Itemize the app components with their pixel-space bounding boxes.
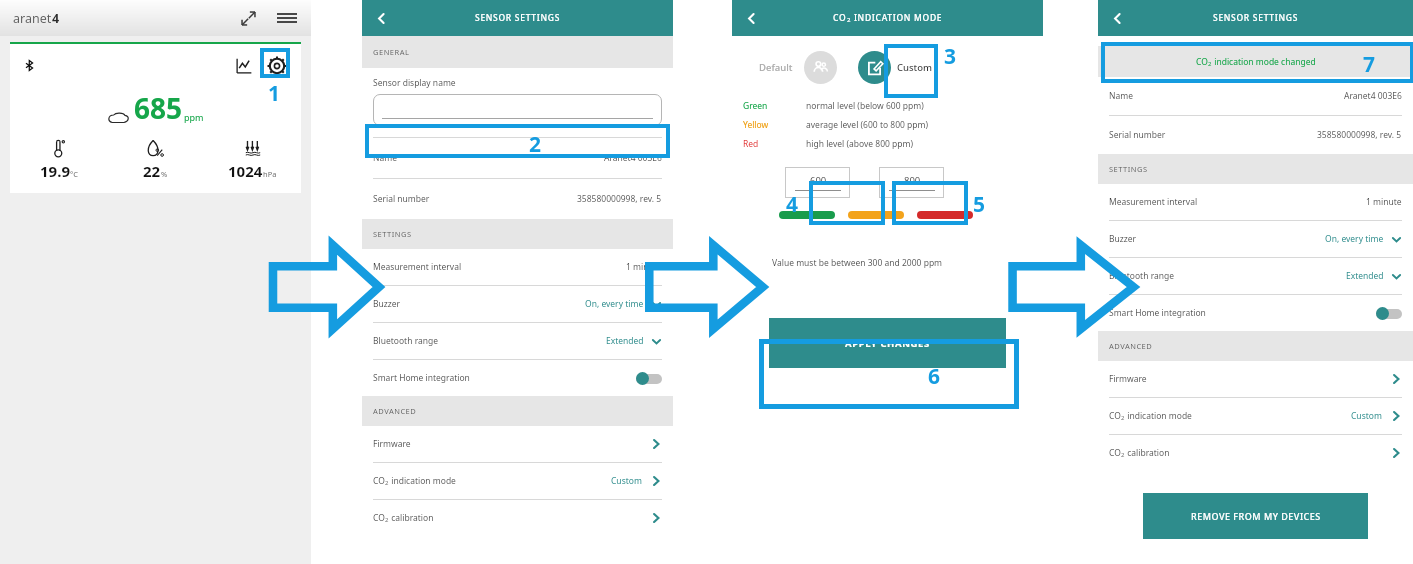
staticText: Serial number bbox=[1109, 129, 1166, 141]
staticText: Custom bbox=[1351, 410, 1382, 422]
staticText: indication mode bbox=[1125, 410, 1192, 422]
staticText: Name bbox=[373, 152, 397, 164]
button[interactable]: 800 bbox=[879, 167, 944, 198]
button[interactable]: Default mode bbox=[804, 51, 837, 84]
button[interactable]: Smart Home integration bbox=[362, 360, 673, 396]
staticText: ADVANCED bbox=[373, 406, 417, 416]
staticText: On, every time bbox=[585, 298, 644, 310]
staticText: 685 bbox=[134, 89, 183, 127]
button[interactable]: Smart Home integration bbox=[1098, 295, 1413, 331]
button[interactable]: Menu bbox=[277, 8, 297, 28]
staticText: CO bbox=[373, 512, 385, 524]
staticText: 2 bbox=[529, 130, 542, 159]
staticText: Buzzer bbox=[373, 298, 401, 310]
button[interactable]: APPLY CHANGES bbox=[769, 318, 1006, 368]
staticText: Custom bbox=[611, 475, 642, 487]
staticText: Firmware bbox=[373, 438, 411, 450]
staticText: calibration bbox=[389, 512, 434, 524]
button[interactable]: Buzzer bbox=[1098, 221, 1413, 257]
staticText: CO bbox=[373, 475, 385, 487]
staticText: 2 bbox=[385, 479, 389, 487]
staticText: Custom bbox=[897, 61, 933, 74]
staticText: 2 bbox=[385, 516, 389, 524]
staticText: ppm bbox=[184, 111, 204, 123]
staticText: Smart Home integration bbox=[373, 372, 470, 384]
staticText: 358580000998, rev. 5 bbox=[1317, 129, 1402, 141]
staticText: CO bbox=[1109, 410, 1121, 422]
staticText: INDICATION MODE bbox=[851, 12, 943, 24]
button[interactable]: Back bbox=[741, 8, 761, 28]
button[interactable]: Back bbox=[371, 8, 391, 28]
staticText: Aranet4 003E6 bbox=[1344, 90, 1402, 102]
staticText: SENSOR SETTINGS bbox=[1213, 12, 1299, 24]
button[interactable]: Buzzer bbox=[362, 286, 673, 322]
staticText: GENERAL bbox=[373, 47, 410, 57]
button[interactable]: Expand bbox=[240, 10, 257, 27]
staticText: Firmware bbox=[1109, 373, 1147, 385]
button[interactable]: Name bbox=[362, 138, 673, 178]
staticText: REMOVE FROM MY DEVICES bbox=[1191, 510, 1321, 522]
staticText: average level (600 to 800 ppm) bbox=[806, 119, 929, 131]
staticText: 5 bbox=[973, 190, 986, 219]
button[interactable]: Bluetooth range bbox=[362, 323, 673, 359]
staticText: 1 bbox=[268, 79, 281, 108]
button[interactable]: Serial number bbox=[1098, 116, 1413, 154]
button[interactable]: Measurement interval bbox=[362, 249, 673, 285]
staticText: 2 bbox=[1208, 60, 1212, 68]
button[interactable]: Measurement interval bbox=[1098, 184, 1413, 220]
staticText: ADVANCED bbox=[1109, 341, 1153, 351]
staticText: CO bbox=[1109, 447, 1121, 459]
staticText: CO bbox=[1196, 56, 1208, 68]
button[interactable]: Serial number bbox=[362, 179, 673, 219]
staticText: Measurement interval bbox=[1109, 196, 1198, 208]
staticText: 7 bbox=[1363, 50, 1376, 79]
staticText: 358580000998, rev. 5 bbox=[577, 193, 662, 205]
staticText: On, every time bbox=[1325, 233, 1384, 245]
staticText: 800 bbox=[904, 174, 921, 187]
staticText: 1 minute bbox=[626, 261, 662, 273]
staticText: Buzzer bbox=[1109, 233, 1137, 245]
staticText: SETTINGS bbox=[1109, 164, 1148, 174]
button[interactable]: Custom mode bbox=[858, 51, 891, 84]
staticText: 22 bbox=[143, 161, 161, 181]
staticText: Smart Home integration bbox=[1109, 307, 1206, 319]
button[interactable]: Settings bbox=[264, 53, 290, 79]
staticText: 2 bbox=[1121, 414, 1125, 422]
button[interactable]: REMOVE FROM MY DEVICES bbox=[1143, 493, 1368, 539]
staticText: Aranet4 003E6 bbox=[604, 152, 662, 164]
button[interactable]: CO bbox=[362, 463, 673, 499]
staticText: 2 bbox=[847, 16, 851, 24]
button[interactable]: CO bbox=[1098, 435, 1413, 471]
staticText: 600 bbox=[810, 174, 827, 187]
staticText: Green bbox=[743, 100, 806, 112]
staticText: high level (above 800 ppm) bbox=[806, 138, 914, 150]
button[interactable] bbox=[373, 94, 662, 126]
button[interactable]: Firmware bbox=[1098, 361, 1413, 397]
button[interactable]: 600 bbox=[785, 167, 850, 198]
staticText: normal level (below 600 ppm) bbox=[806, 100, 924, 112]
button[interactable]: Back bbox=[1107, 8, 1127, 28]
staticText: Sensor display name bbox=[373, 77, 456, 89]
staticText: indication mode changed bbox=[1212, 56, 1316, 68]
staticText: % bbox=[161, 169, 168, 179]
staticText: 3 bbox=[944, 42, 957, 71]
staticText: Bluetooth range bbox=[373, 335, 439, 347]
staticText: Yellow bbox=[743, 119, 806, 131]
staticText: APPLY CHANGES bbox=[845, 337, 930, 350]
staticText: Bluetooth range bbox=[1109, 270, 1175, 282]
button[interactable]: CO bbox=[1098, 398, 1413, 434]
staticText: Serial number bbox=[373, 193, 430, 205]
staticText: aranet bbox=[13, 10, 52, 27]
staticText: Extended bbox=[1346, 270, 1384, 282]
button[interactable]: Chart bbox=[236, 58, 252, 74]
staticText: 2 bbox=[1121, 451, 1125, 459]
staticText: calibration bbox=[1125, 447, 1170, 459]
staticText: 1 minute bbox=[1366, 196, 1402, 208]
button[interactable]: Bluetooth range bbox=[1098, 258, 1413, 294]
button[interactable]: Name bbox=[1098, 77, 1413, 115]
button[interactable]: Firmware bbox=[362, 426, 673, 462]
button[interactable]: CO bbox=[362, 500, 673, 536]
staticText: SETTINGS bbox=[373, 229, 412, 239]
staticText: Value must be between 300 and 2000 ppm bbox=[772, 257, 943, 269]
staticText: 4 bbox=[52, 10, 60, 27]
